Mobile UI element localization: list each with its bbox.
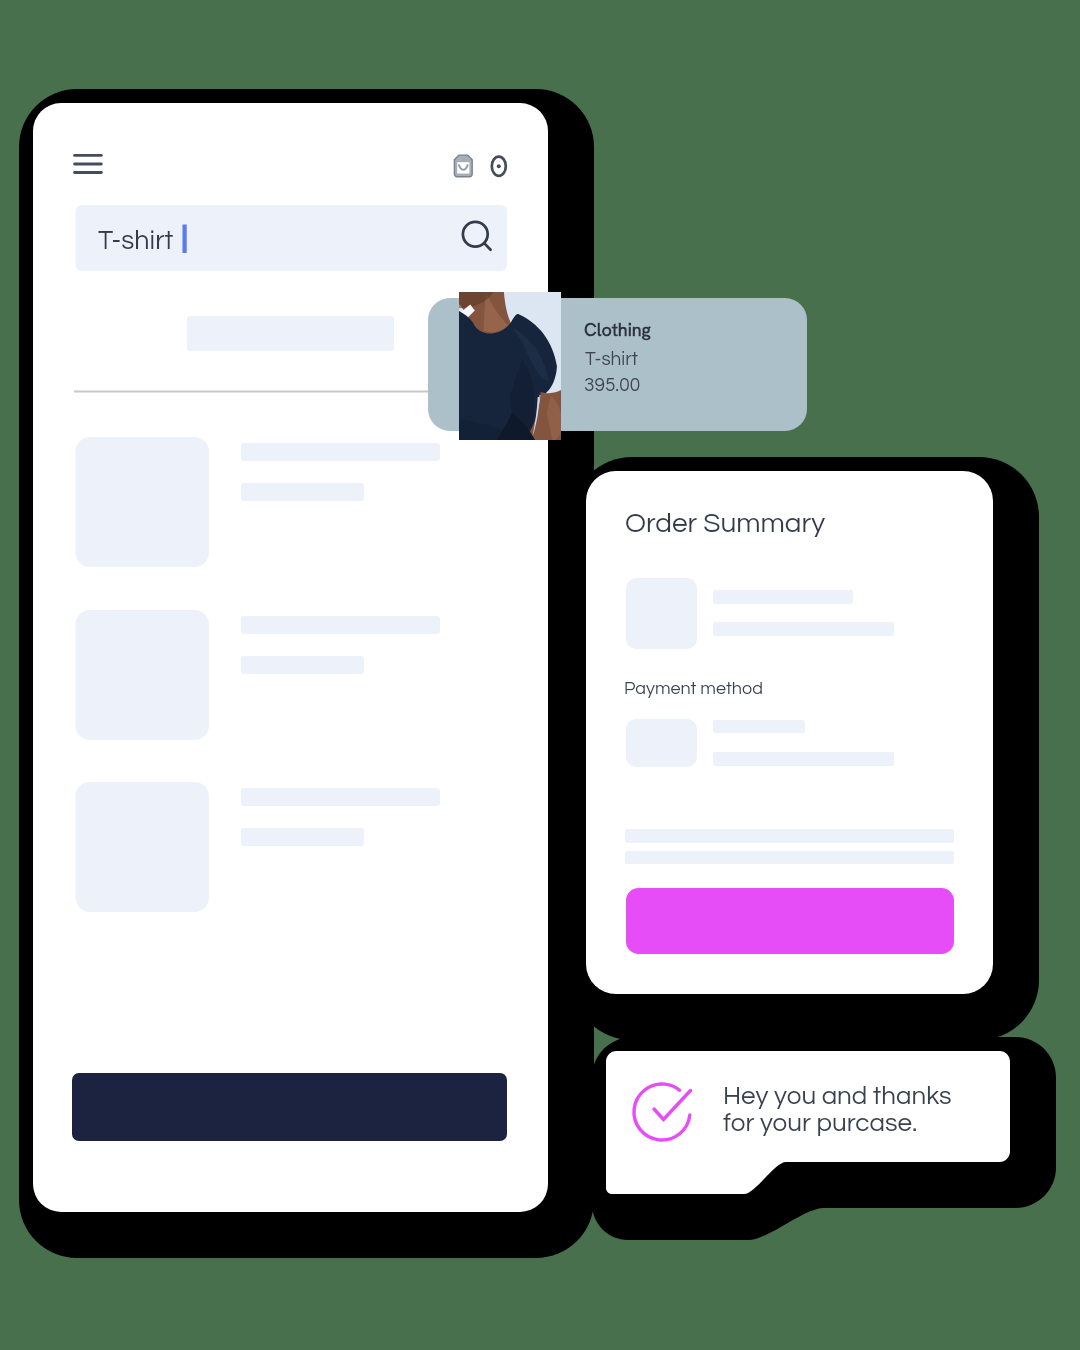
button[interactable]: T-shirt bbox=[76, 205, 507, 271]
button[interactable]: Open navigation menu bbox=[62, 142, 114, 186]
button[interactable]: Shopping bag bbox=[446, 145, 482, 187]
staticText: 395.00 bbox=[584, 375, 641, 395]
button[interactable]: Account bbox=[486, 145, 516, 187]
staticText: Hey you and thanks bbox=[723, 1083, 952, 1110]
staticText: Payment method bbox=[624, 679, 763, 698]
button[interactable]: Checkout bbox=[72, 1073, 507, 1141]
staticText: for your purcase. bbox=[723, 1110, 918, 1137]
staticText: T-shirt bbox=[585, 349, 638, 369]
staticText: Clothing bbox=[584, 318, 651, 341]
staticText: Order Summary bbox=[625, 509, 826, 538]
button[interactable]: Place order bbox=[625, 888, 954, 954]
staticText: T-shirt bbox=[98, 227, 174, 255]
button[interactable]: Clothing bbox=[428, 298, 807, 431]
